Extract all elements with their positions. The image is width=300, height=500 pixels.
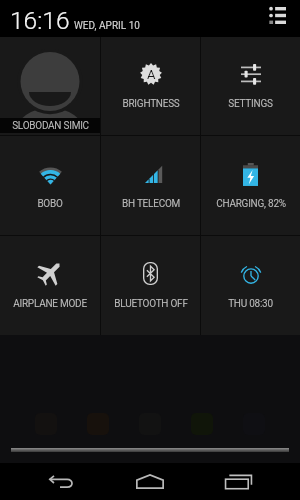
staticText: CHARGING, 82% <box>216 198 286 210</box>
staticText: WED, APRIL 10 <box>74 20 140 32</box>
button[interactable]: AIRPLANE MODE <box>0 236 100 335</box>
staticText: SETTINGS <box>228 98 273 110</box>
button[interactable]: CHARGING, 82% <box>201 136 300 235</box>
staticText: BLUETOOTH OFF <box>114 298 188 310</box>
staticText: AIRPLANE MODE <box>13 298 87 310</box>
button[interactable]: Back <box>40 463 84 500</box>
staticText: 16:16 <box>10 6 70 35</box>
staticText: BOBO <box>37 198 63 210</box>
button[interactable]: BH TELECOM <box>101 136 200 235</box>
button[interactable]: SETTINGS <box>201 37 300 135</box>
button[interactable]: BOBO <box>0 136 100 235</box>
button[interactable]: BLUETOOTH OFF <box>101 236 200 335</box>
button[interactable]: SLOBODAN SIMIC <box>0 37 100 135</box>
staticText: BH TELECOM <box>122 198 180 210</box>
button[interactable]: Quick settings <box>262 0 292 30</box>
button[interactable]: THU 08:30 <box>201 236 300 335</box>
staticText: SLOBODAN SIMIC <box>12 120 89 132</box>
button[interactable]: A <box>101 37 200 135</box>
staticText: THU 08:30 <box>228 298 273 310</box>
button[interactable]: Home <box>128 463 172 500</box>
staticText: BRIGHTNESS <box>122 98 180 110</box>
staticText: A <box>147 67 156 82</box>
button[interactable]: Recent apps <box>216 463 260 500</box>
